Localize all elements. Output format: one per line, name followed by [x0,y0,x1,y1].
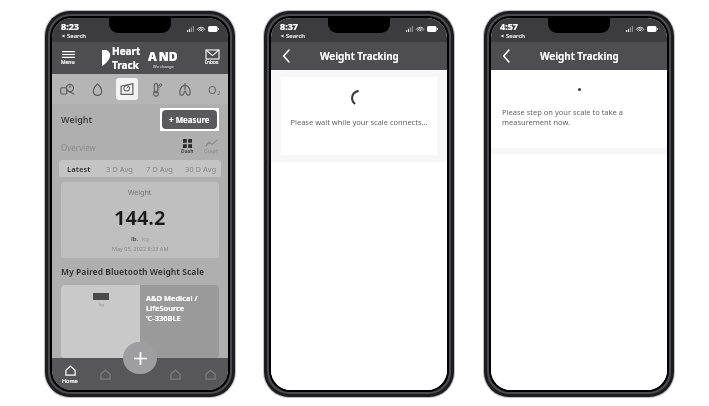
staticText: Latest [67,164,91,174]
staticText: 8:37 [280,20,298,32]
button[interactable]: Temperature [141,74,170,104]
staticText: 7 D Avg [146,164,173,174]
button[interactable]: Inbox [205,50,219,66]
staticText: Overview [61,142,96,153]
staticText: Weight [61,113,93,125]
staticText: kg [142,235,149,243]
staticText: May 05, 2022 8:23 AM [112,245,169,252]
staticText: 30 D Avg [185,164,217,174]
staticText: Search [506,32,525,40]
staticText: 144.2 [114,204,166,231]
button[interactable]: Glucose [82,74,112,104]
staticText: O [208,82,217,97]
button[interactable]: A&D Medical / [140,285,219,358]
button[interactable]: Weight [112,74,141,104]
staticText: A ND [148,48,178,64]
staticText: Weight [128,188,152,198]
button[interactable]: Graph [204,139,219,155]
button[interactable]: Tab [193,358,228,390]
staticText: LifeSource [146,303,185,313]
staticText: 2 [217,89,221,97]
staticText: 4:57 [500,20,518,32]
button[interactable]: 3 D Avg [99,160,139,177]
button[interactable]: Dash [181,139,194,155]
button[interactable]: Back [277,47,295,65]
staticText: Weight Tracking [320,49,399,63]
button[interactable]: Tab [88,358,123,390]
staticText: 3 D Avg [106,164,133,174]
staticText: ‘C-336BLE [146,313,181,323]
staticText: Graph [204,148,219,155]
staticText: Search [67,32,86,40]
staticText: Please wait while your scale connects... [290,117,428,127]
button[interactable]: Oxygen [199,74,228,104]
staticText: A&D Medical / [146,293,198,303]
staticText: + Measure [169,114,210,125]
staticText: My Paired Bluetooth Weight Scale [61,266,205,278]
button[interactable]: Menu [61,50,75,66]
button[interactable]: Home [52,358,88,390]
button[interactable]: 7 D Avg [139,160,180,177]
button[interactable]: Tab [158,358,193,390]
staticText: Heart [112,44,141,58]
staticText: Weight Tracking [540,49,619,63]
staticText: We change [153,64,174,69]
staticText: kg [99,302,104,307]
staticText: Search [286,32,305,40]
button[interactable]: Blood Pressure [52,74,82,104]
button[interactable]: Add [123,342,157,374]
button[interactable]: + Measure [162,110,217,129]
staticText: Home [62,377,78,384]
staticText: Inbox [205,59,219,66]
button[interactable]: Back [497,47,515,65]
button[interactable]: Lungs [170,74,199,104]
button[interactable]: 30 D Avg [180,160,221,177]
staticText: lb. [131,235,139,243]
button[interactable]: Latest [59,160,99,177]
button[interactable]: Weight [61,182,219,258]
staticText: Menu [61,59,75,66]
staticText: Please step on your scale to take a meas… [502,107,656,127]
staticText: Track [112,58,139,72]
staticText: 8:23 [61,20,79,32]
staticText: Dash [181,148,194,155]
